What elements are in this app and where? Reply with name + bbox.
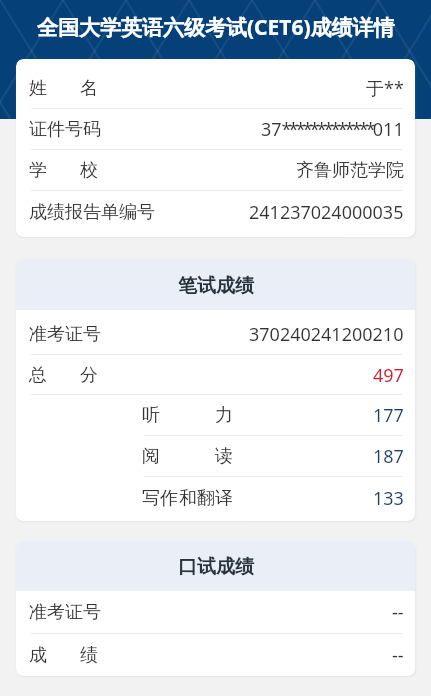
staticText: 译 <box>215 487 233 510</box>
staticText: 考 <box>47 323 65 346</box>
staticText: -- <box>392 643 404 668</box>
staticText: 作 <box>160 487 178 510</box>
button[interactable]: 阅 <box>16 436 415 477</box>
staticText: 成绩报告单编号 <box>29 201 155 224</box>
staticText: -- <box>392 600 404 625</box>
staticText: 翻 <box>197 487 215 510</box>
staticText: 证 <box>65 323 83 346</box>
staticText: 绩 <box>80 644 98 667</box>
staticText: 姓 <box>29 77 47 100</box>
staticText: 阅 <box>142 445 160 468</box>
staticText: 于** <box>366 76 404 101</box>
staticText: 37*************011 <box>261 117 404 142</box>
button[interactable]: 听 <box>16 395 415 436</box>
button[interactable]: 学 <box>16 150 415 191</box>
button[interactable]: 成绩报告单编号 <box>16 191 415 237</box>
button[interactable]: 总 <box>16 355 415 395</box>
staticText: 证 <box>65 601 83 624</box>
staticText: 件 <box>47 118 65 141</box>
staticText: 133 <box>373 486 404 511</box>
button[interactable]: 准 <box>16 591 415 634</box>
button[interactable]: 姓 <box>16 59 415 109</box>
staticText: 187 <box>373 444 404 469</box>
staticText: 分 <box>80 364 98 387</box>
staticText: 考 <box>47 601 65 624</box>
staticText: 全国大学英语六级考试(CET6)成绩详情 <box>37 13 395 42</box>
staticText: 497 <box>373 363 404 388</box>
staticText: 学 <box>29 159 47 182</box>
button[interactable]: 成 <box>16 634 415 676</box>
staticText: 成 <box>29 644 47 667</box>
staticText: 和 <box>179 487 197 510</box>
staticText: 笔试成绩 <box>178 274 254 298</box>
staticText: 241237024000035 <box>249 200 404 225</box>
staticText: 准 <box>29 601 47 624</box>
staticText: 号 <box>65 118 83 141</box>
staticText: 力 <box>215 404 233 427</box>
staticText: 号 <box>83 323 98 346</box>
staticText: 总 <box>29 364 47 387</box>
button[interactable]: 准 <box>16 310 415 355</box>
staticText: 177 <box>373 403 404 428</box>
staticText: 读 <box>215 445 233 468</box>
staticText: 准 <box>29 323 47 346</box>
staticText: 校 <box>80 159 98 182</box>
staticText: 口试成绩 <box>178 555 254 579</box>
staticText: 名 <box>80 77 98 100</box>
staticText: 码 <box>83 118 98 141</box>
staticText: 听 <box>142 404 160 427</box>
button[interactable]: 写 <box>16 477 415 521</box>
staticText: 号 <box>83 601 98 624</box>
button[interactable]: 笔试成绩 <box>16 259 415 310</box>
button[interactable]: 证 <box>16 109 415 150</box>
staticText: 写 <box>142 487 160 510</box>
button[interactable]: 口试成绩 <box>16 541 415 591</box>
staticText: 370240241200210 <box>249 322 404 347</box>
staticText: 证 <box>29 118 47 141</box>
staticText: 齐鲁师范学院 <box>296 159 404 182</box>
